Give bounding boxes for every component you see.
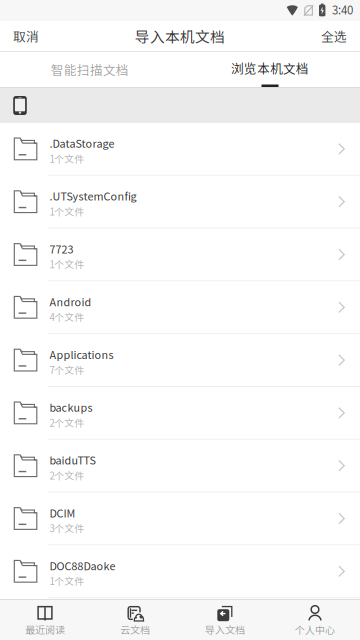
staticText: 1个文件 bbox=[50, 574, 85, 588]
button[interactable]: backups bbox=[0, 387, 360, 440]
staticText: backups bbox=[50, 399, 93, 415]
button[interactable]: 智能扫描文档 bbox=[0, 52, 180, 87]
button[interactable]: DCIM bbox=[0, 493, 360, 545]
staticText: Documents bbox=[50, 610, 109, 626]
staticText: 1个文件 bbox=[50, 204, 85, 218]
button[interactable]: 全选 bbox=[308, 21, 360, 51]
button[interactable]: 浏览本机文档 bbox=[180, 52, 360, 87]
staticText: Android bbox=[50, 294, 92, 309]
staticText: 7个文件 bbox=[50, 363, 85, 377]
button[interactable]: .UTSystemConfig bbox=[0, 176, 360, 229]
staticText: 4个文件 bbox=[50, 310, 85, 324]
button[interactable]: 此设备 bbox=[0, 88, 37, 123]
staticText: 导入文档 bbox=[205, 622, 245, 637]
staticText: .UTSystemConfig bbox=[50, 188, 137, 204]
staticText: 7723 bbox=[50, 241, 74, 256]
button[interactable]: .DataStorage bbox=[0, 123, 360, 176]
staticText: 个人中心 bbox=[295, 622, 335, 637]
staticText: 导入本机文档 bbox=[135, 25, 225, 47]
button[interactable]: 最近阅读 bbox=[0, 600, 90, 640]
staticText: 5个文件 bbox=[50, 627, 85, 640]
staticText: 1个文件 bbox=[50, 151, 85, 165]
staticText: 云文档 bbox=[120, 622, 150, 637]
staticText: DCIM bbox=[50, 505, 76, 520]
button[interactable]: 取消 bbox=[0, 21, 52, 51]
staticText: 最近阅读 bbox=[25, 622, 65, 637]
staticText: 2个文件 bbox=[50, 468, 85, 482]
staticText: .DataStorage bbox=[50, 135, 115, 151]
button[interactable]: Android bbox=[0, 281, 360, 334]
button[interactable]: 个人中心 bbox=[270, 600, 360, 640]
staticText: baiduTTS bbox=[50, 452, 96, 468]
button[interactable]: Documents bbox=[0, 598, 360, 640]
staticText: 智能扫描文档 bbox=[51, 60, 129, 78]
button[interactable]: Applications bbox=[0, 334, 360, 387]
button[interactable]: DOC88Daoke bbox=[0, 545, 360, 598]
staticText: 取消 bbox=[13, 27, 39, 45]
button[interactable]: 导入文档 bbox=[180, 600, 270, 640]
button[interactable]: 云文档 bbox=[90, 600, 180, 640]
button[interactable]: baiduTTS bbox=[0, 440, 360, 493]
button[interactable]: 7723 bbox=[0, 229, 360, 281]
staticText: DOC88Daoke bbox=[50, 558, 116, 573]
staticText: 2个文件 bbox=[50, 415, 85, 429]
staticText: 3:40 bbox=[332, 1, 353, 18]
staticText: Applications bbox=[50, 346, 114, 362]
staticText: 3个文件 bbox=[50, 521, 85, 535]
staticText: 浏览本机文档 bbox=[231, 59, 309, 77]
staticText: 1个文件 bbox=[50, 257, 85, 271]
staticText: 全选 bbox=[321, 27, 347, 45]
